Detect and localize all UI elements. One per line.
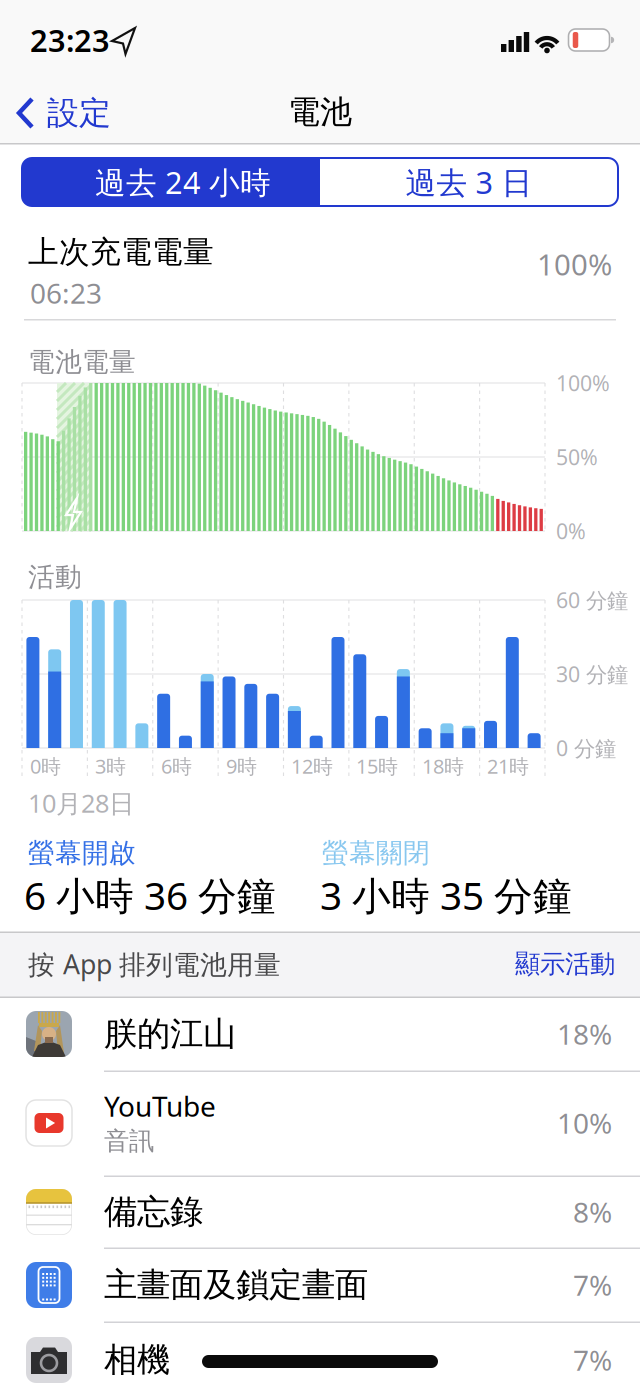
staticText: 21時 [487, 753, 529, 779]
staticText: 主畫面及鎖定畫面 [104, 1264, 368, 1305]
staticText: 15時 [356, 753, 398, 779]
staticText: 7% [573, 1341, 612, 1379]
staticText: 30 分鐘 [556, 660, 628, 688]
staticText: 8% [573, 1193, 612, 1231]
button[interactable]: 朕的江山 [0, 997, 640, 1071]
button[interactable]: 相機 [0, 1323, 640, 1386]
staticText: 0時 [30, 753, 61, 779]
staticText: 6時 [161, 753, 192, 779]
staticText: 100% [537, 244, 612, 283]
staticText: 10% [557, 1104, 612, 1142]
staticText: 上次充電電量 [28, 233, 214, 271]
staticText: 3時 [95, 753, 126, 779]
staticText: YouTube [104, 1087, 216, 1125]
staticText: 50% [556, 443, 598, 471]
button[interactable]: 主畫面及鎖定畫面 [0, 1248, 640, 1322]
button[interactable]: 備忘錄 [0, 1175, 640, 1249]
button[interactable]: Back [15, 93, 111, 133]
button[interactable]: 過去 24 小時 [22, 158, 320, 206]
staticText: 60 分鐘 [556, 586, 628, 614]
staticText: 10月28日 [28, 786, 134, 820]
button[interactable]: 顯示活動 [515, 948, 615, 979]
staticText: 100% [556, 369, 610, 397]
button[interactable]: YouTube [0, 1070, 640, 1175]
staticText: 06:23 [30, 274, 102, 312]
staticText: 音訊 [104, 1125, 154, 1156]
staticText: 0% [556, 517, 586, 545]
staticText: 按 App 排列電池用量 [28, 946, 281, 982]
staticText: 18% [557, 1015, 612, 1053]
staticText: 12時 [291, 753, 333, 779]
staticText: 3 小時 35 分鐘 [320, 869, 572, 921]
staticText: 電池 [288, 92, 352, 132]
staticText: 活動 [28, 561, 82, 593]
button[interactable]: 過去 3 日 [320, 158, 618, 206]
staticText: 過去 24 小時 [95, 162, 271, 202]
staticText: 9時 [226, 753, 257, 779]
staticText: 7% [573, 1266, 612, 1304]
staticText: 電池電量 [28, 346, 136, 378]
staticText: 備忘錄 [104, 1191, 203, 1232]
staticText: 23:23 [30, 20, 110, 60]
staticText: 螢幕關閉 [322, 837, 430, 869]
staticText: 過去 3 日 [405, 162, 532, 202]
staticText: 相機 [104, 1339, 170, 1380]
staticText: 0 分鐘 [556, 734, 616, 762]
staticText: 設定 [47, 93, 111, 133]
staticText: 朕的江山 [104, 1013, 236, 1054]
staticText: 螢幕開啟 [28, 837, 136, 869]
staticText: 顯示活動 [515, 948, 615, 979]
staticText: 6 小時 36 分鐘 [24, 869, 276, 921]
staticText: 18時 [422, 753, 464, 779]
